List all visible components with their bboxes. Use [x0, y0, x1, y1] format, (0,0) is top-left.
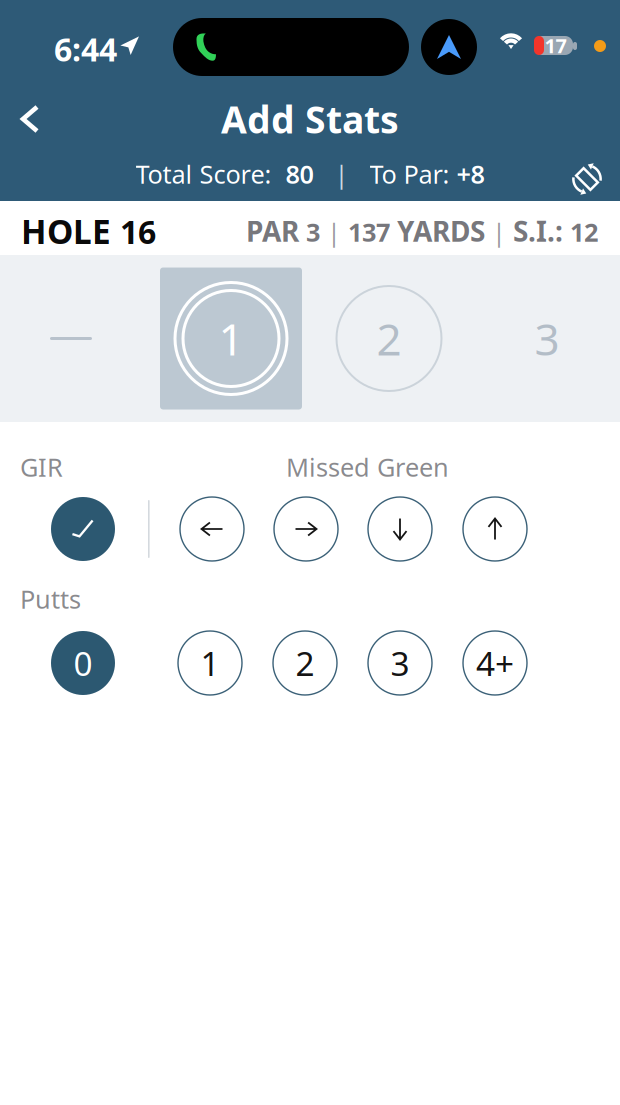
staticText: S.I.:	[513, 212, 570, 250]
staticText: To Par:	[369, 157, 456, 191]
button[interactable]: 2	[273, 631, 337, 695]
staticText: 17	[544, 32, 566, 59]
button[interactable]: 1	[178, 631, 242, 695]
button[interactable]: Green in regulation	[51, 497, 115, 561]
staticText: Putts	[20, 582, 81, 616]
staticText: 3	[534, 309, 559, 368]
staticText: PAR	[246, 212, 306, 250]
button[interactable]: Rotate device	[558, 150, 616, 208]
button[interactable]: 3	[476, 255, 618, 422]
button[interactable]: 3	[368, 631, 432, 695]
staticText: +8	[456, 157, 484, 191]
staticText: YARDS	[390, 212, 485, 250]
button[interactable]: 0	[51, 631, 115, 695]
button[interactable]: Missed right	[274, 497, 338, 561]
button[interactable]: 4+	[463, 631, 527, 695]
staticText: Add Stats	[221, 94, 399, 144]
staticText: Missed Green	[286, 450, 449, 484]
staticText: HOLE	[21, 209, 120, 253]
staticText: 12	[570, 215, 598, 249]
staticText: |	[485, 215, 513, 249]
staticText: 2	[295, 641, 314, 685]
staticText: GIR	[20, 450, 63, 484]
button[interactable]: Missed left	[180, 497, 244, 561]
staticText: 4+	[476, 641, 514, 685]
button[interactable]: Missed short	[368, 497, 432, 561]
button[interactable]: 2	[318, 255, 460, 422]
staticText: 16	[120, 210, 156, 253]
staticText: 3	[306, 215, 320, 249]
staticText: 1	[218, 309, 243, 368]
staticText: 1	[200, 641, 219, 685]
staticText: 6:44	[54, 28, 117, 70]
button[interactable]: 1	[160, 255, 302, 422]
button[interactable]: Back	[2, 91, 58, 147]
staticText: 2	[376, 309, 401, 368]
staticText: 137	[348, 215, 390, 249]
staticText: 3	[390, 641, 409, 685]
staticText: Total Score:	[135, 157, 278, 191]
staticText: |	[320, 215, 348, 249]
staticText: |	[313, 157, 369, 191]
staticText: 0	[73, 641, 92, 685]
button[interactable]: Missed long	[463, 497, 527, 561]
staticText: 80	[278, 157, 313, 191]
button[interactable]: Clear score	[0, 255, 142, 422]
